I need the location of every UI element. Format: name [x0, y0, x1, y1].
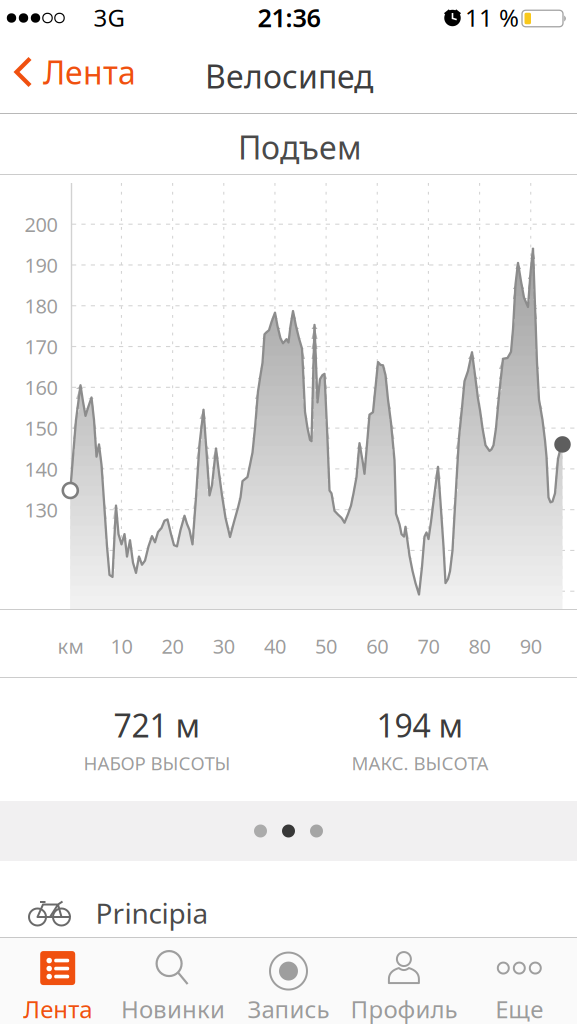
staticText: Подъем [238, 126, 362, 168]
staticText: км [57, 633, 83, 659]
staticText: 150 [24, 415, 57, 441]
button[interactable]: Запись [231, 952, 346, 1024]
button[interactable]: Новинки [115, 952, 231, 1024]
staticText: МАКС. ВЫСОТА [351, 751, 488, 775]
staticText: 130 [24, 496, 57, 523]
staticText: 20 [162, 633, 184, 659]
staticText: Велосипед [205, 55, 373, 97]
staticText: 90 [520, 633, 542, 659]
staticText: Еще [495, 993, 543, 1024]
staticText: Лента [23, 993, 92, 1024]
staticText: 80 [469, 633, 491, 659]
staticText: 170 [24, 333, 57, 360]
staticText: 721 м [113, 704, 200, 746]
staticText: 30 [213, 633, 235, 659]
staticText: 180 [24, 292, 57, 319]
staticText: Principia [95, 894, 208, 932]
staticText: Профиль [350, 993, 457, 1024]
staticText: 60 [366, 633, 388, 659]
button[interactable]: Principia [0, 861, 577, 937]
staticText: 194 м [376, 704, 463, 746]
staticText: 70 [417, 633, 439, 659]
staticText: 190 [24, 252, 57, 278]
staticText: 140 [24, 456, 57, 482]
staticText: 3G [93, 2, 124, 33]
staticText: 21:36 [257, 1, 320, 34]
staticText: 10 [110, 633, 132, 659]
staticText: 160 [24, 374, 57, 401]
staticText: Лента [43, 51, 136, 93]
staticText: 50 [315, 633, 337, 659]
button[interactable]: Назад: Лента [0, 31, 136, 113]
staticText: 40 [264, 633, 286, 659]
staticText: 200 [24, 211, 57, 237]
button[interactable]: Еще [462, 952, 577, 1024]
staticText: 11 % [465, 2, 519, 33]
staticText: Запись [247, 993, 329, 1024]
staticText: Новинки [121, 993, 225, 1024]
button[interactable]: Лента [0, 952, 115, 1024]
staticText: НАБОР ВЫСОТЫ [83, 751, 230, 775]
button[interactable]: Профиль [346, 952, 462, 1024]
